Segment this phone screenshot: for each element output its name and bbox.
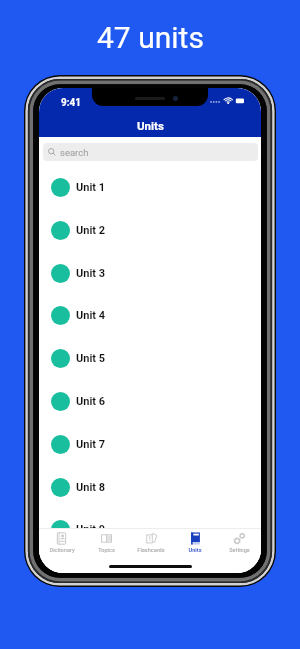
button[interactable]: Unit 7	[39, 423, 261, 466]
button[interactable]: Unit 4	[39, 294, 261, 337]
staticText: Unit 3	[76, 267, 106, 280]
staticText: Unit 4	[76, 309, 106, 322]
button[interactable]: Unit 1	[39, 166, 261, 209]
staticText: Unit 7	[76, 438, 106, 451]
staticText: Unit 8	[76, 481, 106, 494]
staticText: Dictionary	[49, 547, 75, 554]
staticText: Settings	[229, 547, 250, 554]
button[interactable]: Unit 8	[39, 466, 261, 509]
staticText: 9:41	[61, 97, 82, 109]
button[interactable]: Unit 9	[39, 508, 261, 551]
staticText: Unit 9	[76, 523, 106, 536]
button[interactable]: Unit 2	[39, 209, 261, 252]
button[interactable]: Units	[173, 529, 217, 555]
staticText: Flashcards	[137, 547, 165, 554]
button[interactable]: Topics	[84, 529, 129, 555]
staticText: Units	[188, 547, 202, 554]
staticText: Unit 1	[76, 181, 106, 194]
button[interactable]: Flashcards	[129, 529, 173, 555]
button[interactable]: Dictionary	[39, 529, 84, 555]
staticText: search	[60, 147, 89, 158]
button[interactable]: Settings	[217, 529, 261, 555]
staticText: Units	[137, 119, 164, 132]
staticText: Topics	[98, 547, 115, 554]
staticText: Unit 5	[76, 352, 106, 365]
button[interactable]: Unit 5	[39, 337, 261, 380]
staticText: Unit 6	[76, 395, 106, 408]
staticText: 47 units	[97, 20, 204, 55]
button[interactable]: Unit 6	[39, 380, 261, 423]
button[interactable]: search	[43, 143, 258, 161]
button[interactable]: Unit 3	[39, 252, 261, 295]
staticText: Unit 2	[76, 224, 106, 237]
